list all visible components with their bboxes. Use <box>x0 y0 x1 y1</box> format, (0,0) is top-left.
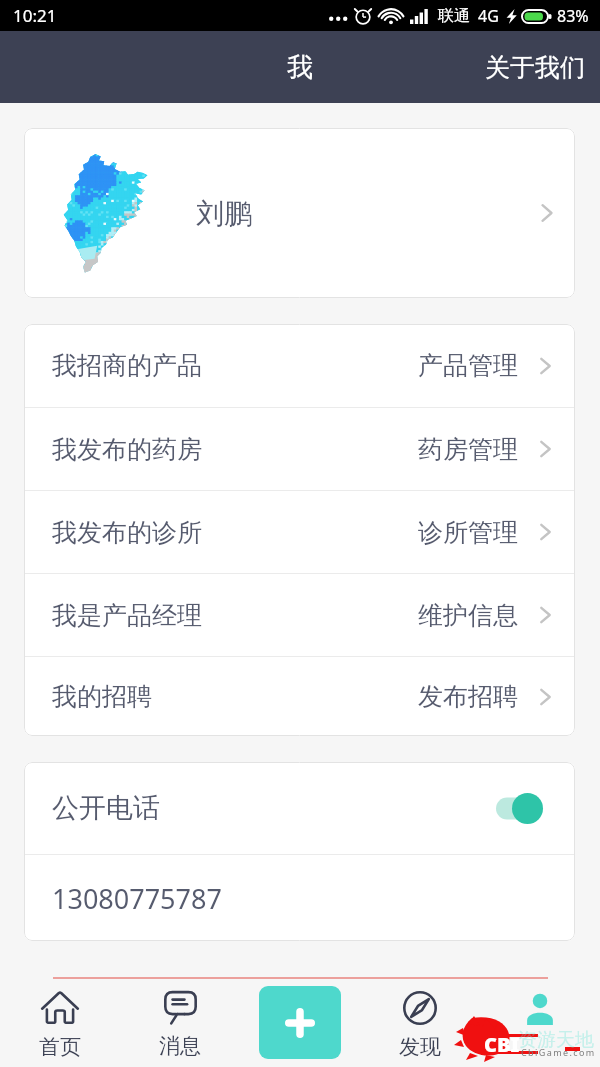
button[interactable]: 我发布的药房 <box>24 408 575 490</box>
staticText: CBI <box>484 1031 520 1058</box>
button[interactable]: 我招商的产品 <box>24 324 575 407</box>
staticText: 消息 <box>159 1033 201 1059</box>
staticText: 产品管理 <box>418 350 518 381</box>
button[interactable]: 我发布的诊所 <box>24 491 575 573</box>
button[interactable]: 发现 <box>360 977 480 1067</box>
staticText: 资游天地 <box>518 1028 594 1052</box>
button[interactable]: 消息 <box>120 977 240 1067</box>
staticText: 83% <box>557 5 589 27</box>
button[interactable]: 关于我们 <box>465 38 600 97</box>
button[interactable]: Add <box>259 986 341 1059</box>
staticText: 首页 <box>39 1034 81 1060</box>
staticText: 联通 <box>438 6 470 26</box>
staticText: 我 <box>287 51 313 84</box>
staticText: 我是产品经理 <box>52 600 202 631</box>
button[interactable]: 13080775787 <box>24 855 575 941</box>
staticText: 10:21 <box>13 4 57 27</box>
staticText: 我招商的产品 <box>52 350 202 381</box>
staticText: 我的招聘 <box>52 681 152 712</box>
button[interactable]: Profile <box>480 977 600 1067</box>
staticText: 发布招聘 <box>418 681 518 712</box>
staticText: 4G <box>478 5 499 27</box>
staticText: 诊所管理 <box>418 517 518 548</box>
button[interactable]: 我是产品经理 <box>24 574 575 656</box>
staticText: 公开电话 <box>52 791 160 825</box>
button[interactable]: 公开电话 <box>24 762 575 854</box>
staticText: 13080775787 <box>52 880 222 917</box>
staticText: 我发布的药房 <box>52 434 202 465</box>
button[interactable]: 首页 <box>0 977 120 1067</box>
staticText: 关于我们 <box>485 52 585 83</box>
button[interactable]: 我的招聘 <box>24 657 575 736</box>
staticText: 药房管理 <box>418 434 518 465</box>
button[interactable]: Toggle public phone <box>496 793 575 824</box>
staticText: 发现 <box>399 1034 441 1060</box>
staticText: CbiGame.com <box>521 1046 596 1058</box>
button[interactable]: 刘鹏 <box>24 128 575 298</box>
staticText: 我发布的诊所 <box>52 517 202 548</box>
staticText: 维护信息 <box>418 600 518 631</box>
staticText: 刘鹏 <box>196 196 252 231</box>
